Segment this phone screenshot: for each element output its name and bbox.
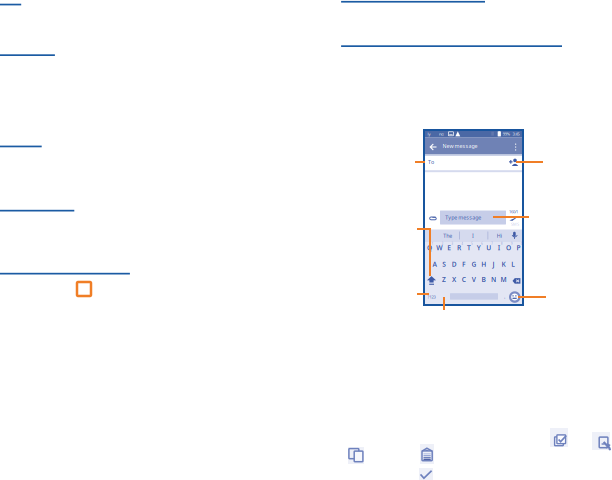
- staticText: T: [467, 243, 471, 252]
- staticText: A: [432, 260, 436, 269]
- staticText: E: [447, 243, 451, 252]
- staticText: To: [428, 158, 434, 166]
- staticText: 7: [491, 242, 493, 245]
- staticText: O: [506, 243, 511, 252]
- staticText: no:: [439, 131, 444, 136]
- staticText: V: [472, 275, 476, 284]
- staticText: S: [442, 260, 446, 269]
- staticText: 3:45: [512, 131, 519, 136]
- staticText: H: [481, 260, 486, 269]
- button[interactable]: More options: [514, 143, 518, 152]
- staticText: L: [511, 260, 515, 269]
- staticText: 9: [511, 242, 513, 245]
- staticText: D: [452, 260, 457, 269]
- staticText: 8: [501, 242, 503, 245]
- staticText: X: [452, 275, 456, 284]
- staticText: 6: [481, 242, 483, 245]
- staticText: K: [501, 260, 505, 269]
- staticText: N: [491, 275, 496, 284]
- staticText: 160/1: [509, 209, 518, 214]
- staticText: 99%: [503, 131, 510, 136]
- staticText: The: [443, 232, 452, 239]
- button[interactable]: I: [468, 230, 478, 242]
- staticText: ?123: [427, 294, 435, 300]
- staticText: M: [500, 275, 506, 284]
- staticText: New message: [443, 142, 478, 150]
- staticText: I: [498, 243, 500, 252]
- staticText: .: [504, 293, 505, 300]
- staticText: J: [493, 260, 495, 269]
- staticText: 0: [521, 242, 523, 245]
- button[interactable]: ?123: [425, 293, 437, 301]
- staticText: 5: [471, 242, 473, 245]
- staticText: 4: [461, 242, 463, 245]
- staticText: Y: [477, 243, 481, 252]
- button[interactable]: Space: [450, 293, 498, 300]
- button[interactable]: Voice input: [510, 230, 519, 240]
- staticText: Z: [442, 275, 446, 284]
- staticText: Hi: [497, 232, 502, 239]
- button[interactable]: Backspace: [512, 278, 521, 285]
- staticText: U: [486, 243, 491, 252]
- staticText: B: [482, 275, 486, 284]
- staticText: 3: [452, 242, 454, 245]
- button[interactable]: Shift: [427, 275, 436, 285]
- button[interactable]: Emoji: [509, 291, 521, 303]
- button[interactable]: The: [440, 230, 456, 242]
- staticText: Type message: [445, 214, 481, 221]
- staticText: R: [457, 243, 461, 252]
- staticText: G: [471, 260, 476, 269]
- staticText: 1: [432, 242, 434, 245]
- button[interactable]: Hi: [493, 230, 505, 242]
- staticText: Q: [427, 243, 432, 252]
- staticText: SMS: [511, 221, 519, 227]
- staticText: ly: [428, 131, 431, 136]
- button[interactable]: Back: [429, 142, 438, 152]
- staticText: I: [472, 232, 474, 239]
- staticText: C: [462, 275, 466, 284]
- staticText: F: [462, 260, 466, 269]
- staticText: 2: [442, 242, 444, 245]
- staticText: W: [436, 243, 442, 252]
- staticText: P: [516, 243, 520, 252]
